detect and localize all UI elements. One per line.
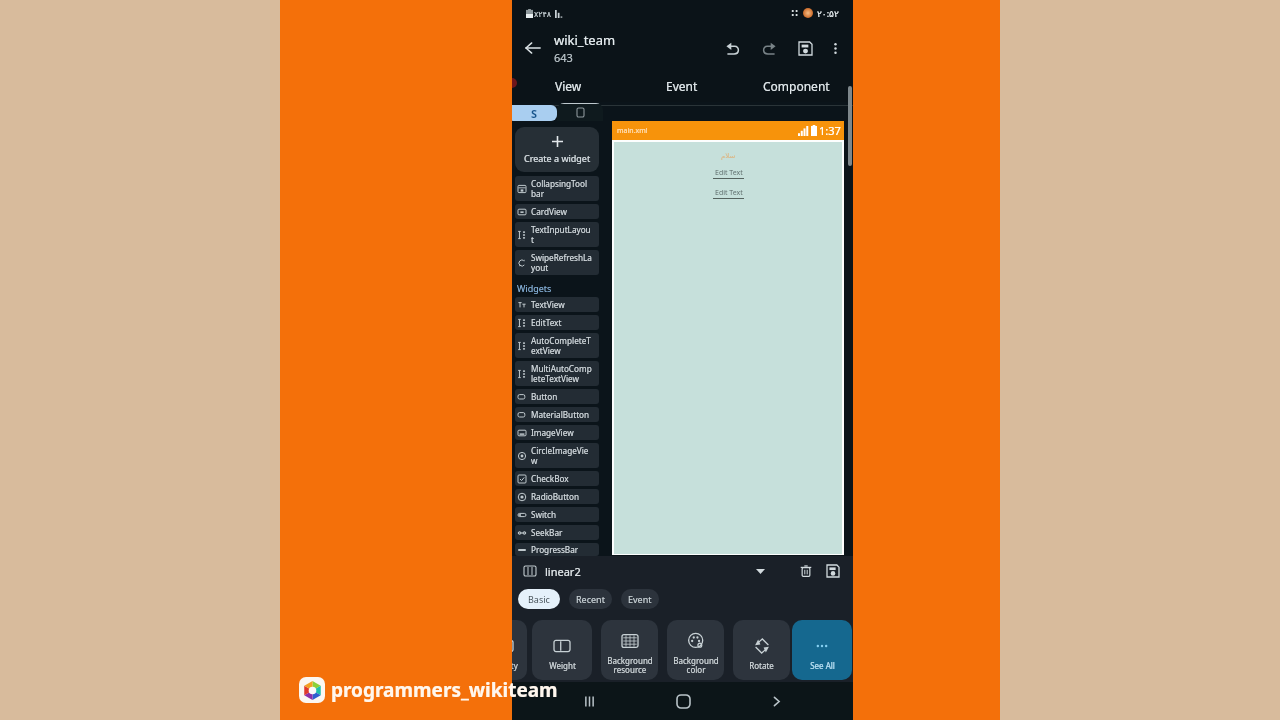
- staticText: Edit Text: [715, 188, 743, 198]
- staticText: Event: [666, 78, 698, 94]
- button[interactable]: SwipeRefreshLayout: [515, 250, 599, 275]
- button[interactable]: Gravity: [512, 620, 527, 680]
- staticText: View: [555, 78, 582, 94]
- button[interactable]: CollapsingToolbar: [515, 176, 599, 201]
- button[interactable]: MultiAutoCompleteTextView: [515, 361, 599, 386]
- button[interactable]: Recent apps: [572, 684, 606, 718]
- staticText: CircleImageView: [531, 445, 592, 466]
- button[interactable]: See All: [792, 620, 852, 680]
- button[interactable]: EditText: [515, 315, 599, 330]
- button[interactable]: Undo: [719, 34, 747, 62]
- button[interactable]: MaterialButton: [515, 407, 599, 422]
- staticText: Switch: [531, 509, 592, 520]
- button[interactable]: Basic: [518, 589, 560, 609]
- staticText: Background resource: [607, 655, 653, 676]
- button[interactable]: Views tab: [557, 103, 603, 121]
- staticText: Weight: [549, 660, 576, 671]
- staticText: wiki_team: [554, 31, 616, 49]
- button[interactable]: SeekBar: [515, 525, 599, 540]
- staticText: Button: [531, 391, 592, 402]
- staticText: Basic: [528, 593, 550, 605]
- button[interactable]: Expand selector: [752, 563, 768, 579]
- staticText: 1:37: [819, 123, 841, 138]
- staticText: main.xml: [617, 126, 648, 136]
- button[interactable]: Component: [739, 70, 853, 102]
- button[interactable]: Layouts tab: [512, 105, 557, 121]
- staticText: x۲۴۸: [534, 8, 552, 19]
- button[interactable]: Save: [791, 34, 819, 62]
- button[interactable]: Event: [621, 589, 659, 609]
- staticText: S: [531, 106, 538, 121]
- button[interactable]: Weight: [532, 620, 592, 680]
- button[interactable]: TextInputLayout: [515, 222, 599, 247]
- staticText: SeekBar: [531, 527, 592, 538]
- staticText: linear2: [545, 564, 581, 579]
- button[interactable]: Redo: [755, 34, 783, 62]
- staticText: MultiAutoCompleteTextView: [531, 363, 592, 384]
- staticText: CheckBox: [531, 473, 592, 484]
- staticText: 643: [554, 50, 573, 65]
- button[interactable]: ImageView: [515, 425, 599, 440]
- staticText: RadioButton: [531, 491, 592, 502]
- staticText: Recent: [576, 593, 605, 605]
- staticText: Event: [628, 593, 652, 605]
- button[interactable]: Event: [625, 70, 739, 102]
- button[interactable]: CheckBox: [515, 471, 599, 486]
- button[interactable]: Switch: [515, 507, 599, 522]
- staticText: EditText: [531, 317, 592, 328]
- button[interactable]: Save: [823, 562, 843, 580]
- staticText: Rotate: [749, 660, 774, 671]
- staticText: ImageView: [531, 427, 592, 438]
- staticText: Widgets: [517, 282, 552, 294]
- button[interactable]: ProgressBar: [515, 543, 599, 556]
- staticText: Gravity: [512, 660, 518, 671]
- button[interactable]: Recent: [569, 589, 612, 609]
- button[interactable]: View: [512, 70, 625, 102]
- button[interactable]: Background resource: [601, 620, 658, 680]
- button[interactable]: RadioButton: [515, 489, 599, 504]
- button[interactable]: Home: [666, 684, 700, 718]
- button[interactable]: TextView: [515, 297, 599, 312]
- staticText: TextInputLayout: [531, 224, 592, 245]
- staticText: Edit Text: [715, 168, 743, 178]
- button[interactable]: CardView: [515, 204, 599, 219]
- button[interactable]: CircleImageView: [515, 443, 599, 468]
- staticText: See All: [810, 660, 835, 671]
- staticText: CollapsingToolbar: [531, 178, 592, 199]
- staticText: TextView: [531, 299, 592, 310]
- staticText: سلام: [721, 152, 736, 160]
- staticText: Create a widget: [524, 152, 591, 164]
- button[interactable]: AutoCompleteTextView: [515, 333, 599, 358]
- staticText: ۲۰:۵۲: [817, 7, 839, 19]
- staticText: ProgressBar: [531, 544, 592, 555]
- staticText: AutoCompleteTextView: [531, 335, 592, 356]
- staticText: SwipeRefreshLayout: [531, 252, 592, 273]
- button[interactable]: Button: [515, 389, 599, 404]
- button[interactable]: Background color: [667, 620, 724, 680]
- staticText: MaterialButton: [531, 409, 592, 420]
- button[interactable]: Rotate: [733, 620, 790, 680]
- staticText: Component: [763, 78, 830, 94]
- button[interactable]: Back: [518, 33, 548, 63]
- button[interactable]: Create a widget: [515, 127, 599, 172]
- staticText: CardView: [531, 206, 592, 217]
- button[interactable]: More options: [823, 36, 847, 60]
- staticText: Background color: [673, 655, 719, 676]
- button[interactable]: Back: [759, 684, 793, 718]
- button[interactable]: Delete: [796, 562, 816, 580]
- staticText: programmers_wikiteam: [331, 677, 558, 703]
